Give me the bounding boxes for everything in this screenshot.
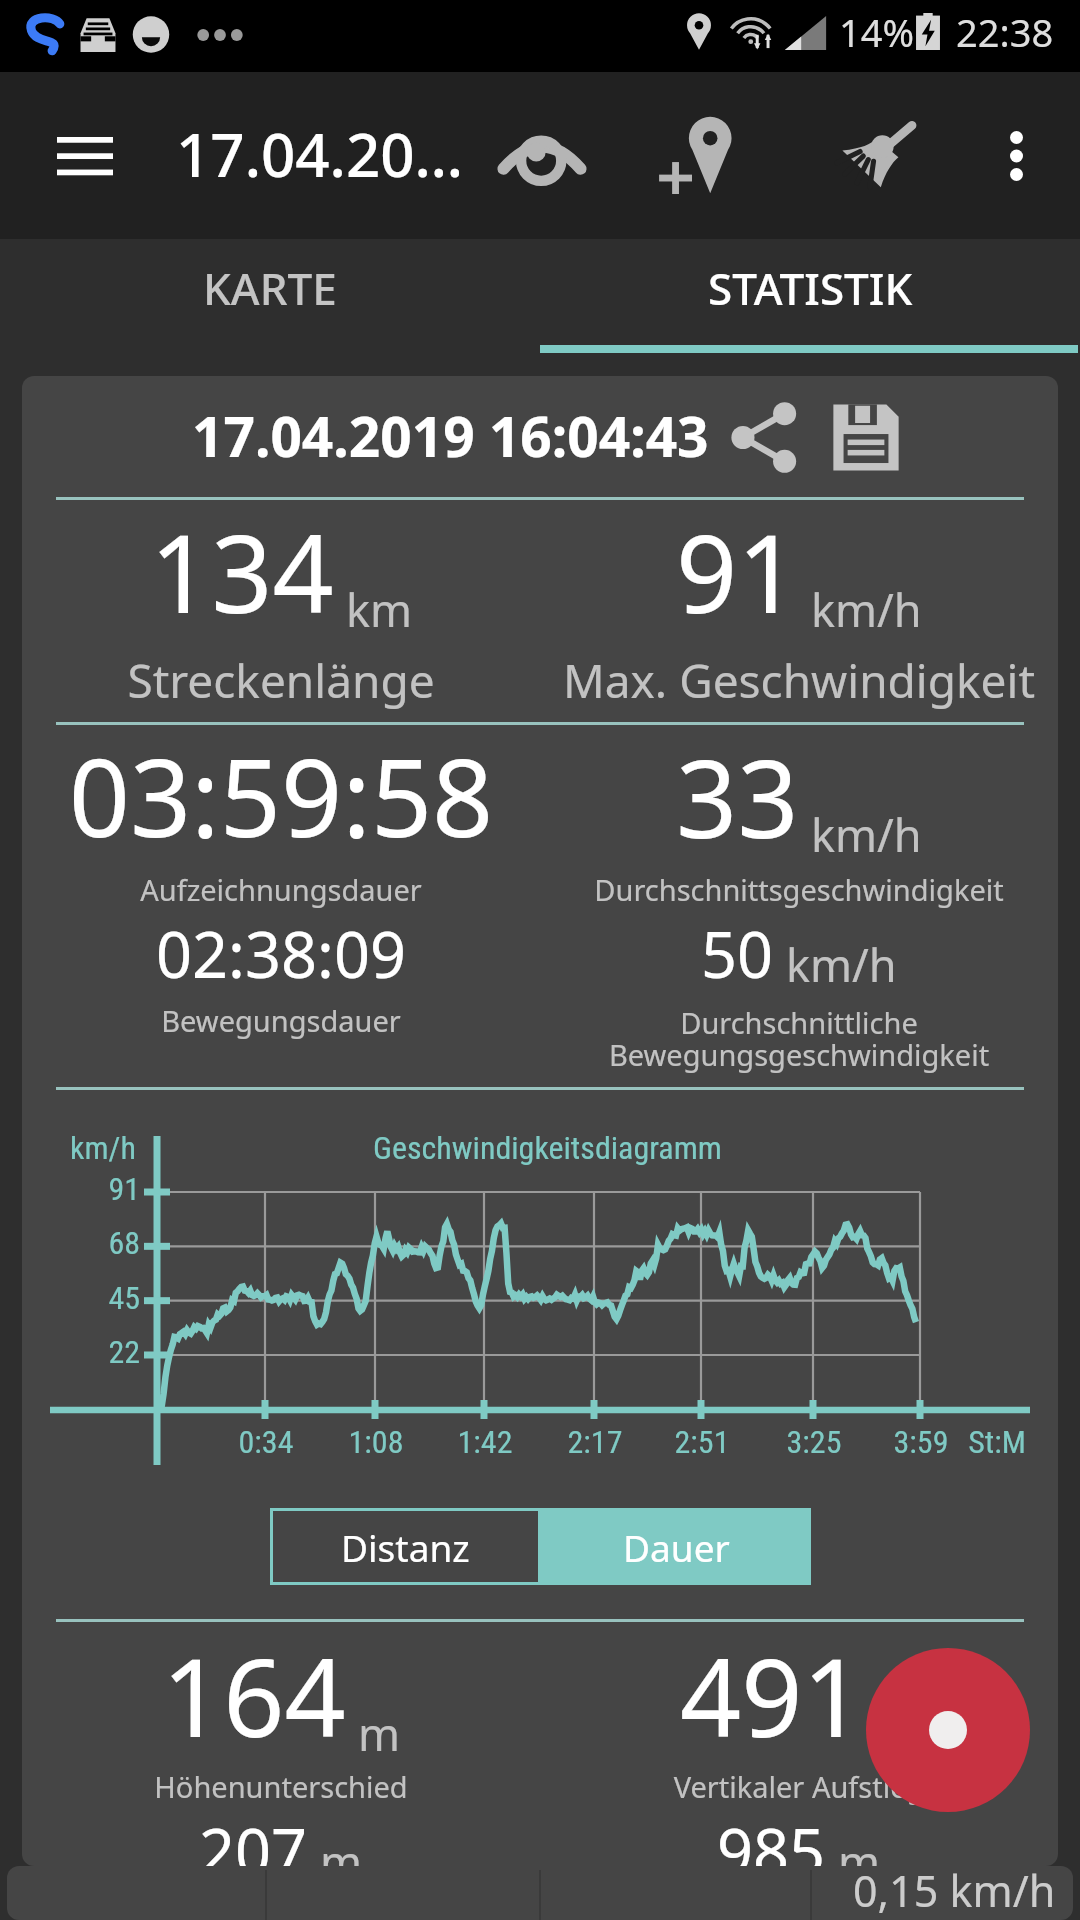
staticText: 68 bbox=[50, 1224, 140, 1262]
staticText: Streckenlänge bbox=[0, 649, 821, 712]
staticText: m bbox=[838, 1831, 881, 1892]
staticText: Bewegungsdauer bbox=[0, 1001, 821, 1040]
staticText: 2:51 bbox=[642, 1423, 762, 1461]
staticText: Distanz bbox=[341, 1522, 470, 1572]
staticText: 0:34 bbox=[206, 1423, 326, 1461]
button[interactable]: Aufzeichnung löschen bbox=[814, 84, 938, 227]
staticText: 02:38:09 bbox=[0, 911, 821, 997]
button[interactable]: Aufzeichnung starten bbox=[866, 1648, 1030, 1812]
button[interactable]: STATISTIK bbox=[540, 239, 1080, 353]
button[interactable]: KARTE bbox=[0, 239, 540, 353]
staticText: 17.04.20… bbox=[176, 113, 464, 195]
button[interactable]: Wegpunkt hinzufügen bbox=[637, 84, 761, 227]
button[interactable]: Anzeigen bbox=[480, 84, 604, 227]
staticText: 45 bbox=[50, 1279, 140, 1317]
staticText: 33 bbox=[676, 724, 799, 870]
staticText: 91 bbox=[676, 499, 799, 645]
staticText: 03:59:58 bbox=[0, 723, 821, 869]
staticText: 985 bbox=[717, 1808, 826, 1894]
staticText: 207 bbox=[199, 1808, 308, 1894]
staticText: 134 bbox=[150, 499, 334, 645]
staticText: 14% bbox=[839, 6, 915, 58]
staticText: 2:17 bbox=[535, 1423, 655, 1461]
staticText: 91 bbox=[50, 1170, 140, 1208]
staticText: 17.04.2019 16:04:43 bbox=[192, 398, 709, 473]
staticText: km/h bbox=[811, 579, 922, 640]
staticText: Vertikaler Aufstieg bbox=[259, 1767, 1080, 1806]
staticText: KARTE bbox=[203, 258, 337, 318]
button[interactable]: Dauer bbox=[541, 1508, 811, 1585]
button[interactable]: Menü bbox=[12, 93, 157, 218]
button[interactable]: Teilen bbox=[716, 388, 814, 486]
staticText: km/h bbox=[786, 934, 897, 995]
button[interactable]: Distanz bbox=[270, 1508, 541, 1585]
staticText: km/h bbox=[70, 1129, 136, 1167]
staticText: Höhenunterschied bbox=[0, 1767, 821, 1806]
staticText: m bbox=[358, 1703, 401, 1764]
staticText: Aufzeichnungsdauer bbox=[0, 870, 821, 909]
staticText: 1:42 bbox=[425, 1423, 545, 1461]
staticText: 0,15 km/h bbox=[853, 1861, 1056, 1920]
staticText: 491 bbox=[680, 1623, 864, 1769]
button[interactable]: Weitere Optionen bbox=[962, 84, 1070, 227]
staticText: Max. Geschwindigkeit bbox=[259, 649, 1080, 712]
staticText: 22:38 bbox=[956, 6, 1054, 58]
staticText: STATISTIK bbox=[708, 258, 913, 318]
staticText: Durchschnittliche bbox=[259, 1003, 1080, 1042]
staticText: Durchschnittsgeschwindigkeit bbox=[259, 870, 1080, 909]
staticText: km bbox=[346, 579, 413, 640]
staticText: Bewegungsgeschwindigkeit bbox=[259, 1035, 1080, 1074]
staticText: m bbox=[320, 1831, 363, 1892]
staticText: 164 bbox=[162, 1623, 346, 1769]
staticText: Geschwindigkeitsdiagramm bbox=[373, 1129, 722, 1167]
staticText: St:M bbox=[937, 1423, 1057, 1461]
staticText: km/h bbox=[811, 804, 922, 865]
staticText: 50 bbox=[701, 911, 774, 997]
staticText: 3:25 bbox=[754, 1423, 874, 1461]
staticText: 3:59 bbox=[861, 1423, 981, 1461]
button[interactable]: Speichern bbox=[818, 388, 914, 486]
staticText: 22 bbox=[50, 1333, 140, 1371]
staticText: Dauer bbox=[623, 1522, 730, 1572]
staticText: 1:08 bbox=[316, 1423, 436, 1461]
